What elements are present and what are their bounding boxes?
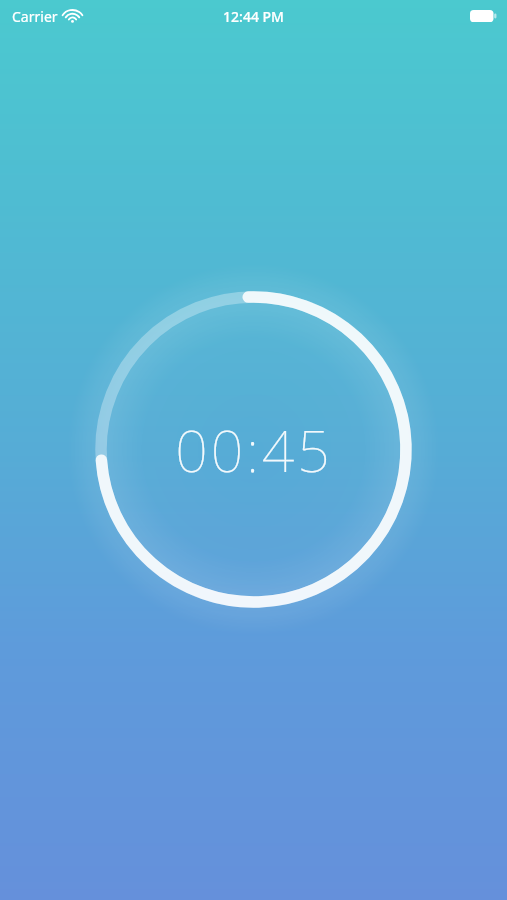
staticText: 00:45: [175, 411, 333, 489]
other: Wi-Fi signal: [64, 10, 81, 23]
other: Battery full: [470, 10, 497, 22]
button[interactable]: Timer 00:45, tap to pause: [68, 264, 439, 635]
staticText: 12:44 PM: [223, 7, 284, 26]
staticText: Carrier: [12, 7, 58, 26]
